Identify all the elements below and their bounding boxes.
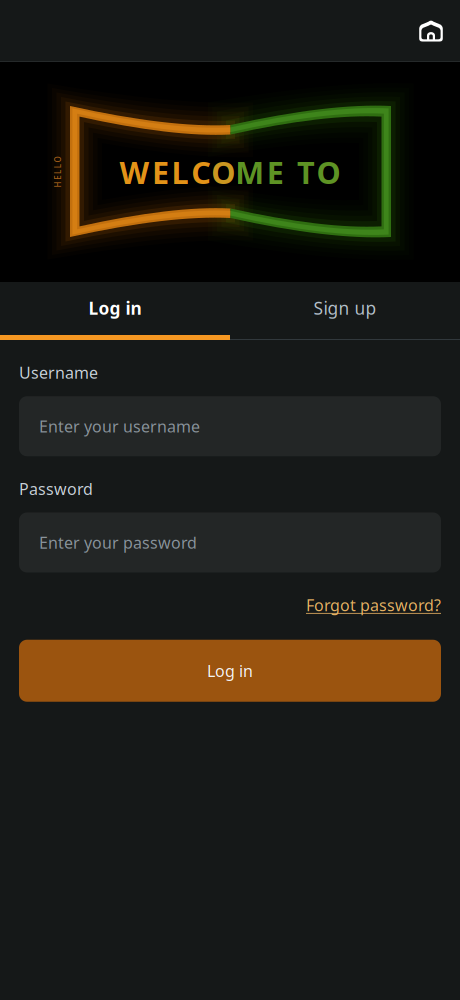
staticText: Forgot password? (306, 594, 441, 616)
staticText: HELLO (42, 167, 74, 177)
button[interactable]: Home (409, 8, 453, 52)
staticText: Log in (207, 660, 253, 681)
staticText: Sign up (313, 296, 376, 319)
staticText: WELC (119, 152, 211, 192)
staticText: ME TO (235, 152, 341, 192)
staticText: Username (19, 362, 98, 383)
button[interactable]: Log in (0, 282, 230, 334)
staticText: Log in (88, 296, 141, 319)
button[interactable]: Log in (19, 640, 441, 702)
staticText: O (211, 152, 235, 192)
button[interactable]: Forgot password? (19, 572, 441, 616)
staticText: Enter your password (39, 532, 197, 553)
staticText: Enter your username (39, 416, 200, 437)
staticText: Password (19, 478, 93, 499)
button[interactable]: Sign up (230, 282, 460, 334)
